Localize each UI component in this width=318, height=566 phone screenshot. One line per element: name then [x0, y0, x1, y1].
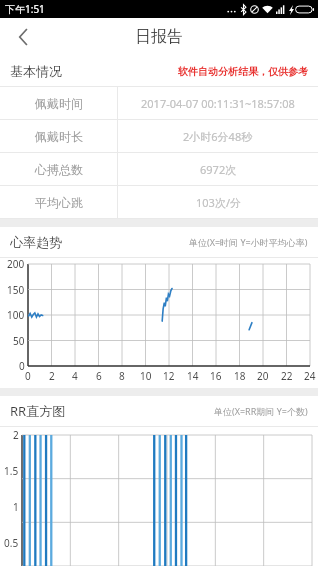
staticText: 20 — [257, 369, 269, 383]
staticText: 心率趋势 — [10, 234, 62, 250]
button[interactable]: 佩戴时间 — [0, 87, 318, 119]
staticText: 2 — [49, 369, 55, 383]
staticText: 12 — [163, 369, 175, 383]
staticText: 2 — [13, 428, 19, 442]
staticText: 6 — [96, 369, 102, 383]
staticText: 1 — [13, 500, 19, 514]
staticText: 100 — [7, 308, 25, 322]
button[interactable]: 心搏总数 — [0, 153, 318, 185]
staticText: 103次/分 — [196, 195, 241, 210]
button[interactable]: Back — [0, 18, 46, 56]
staticText: RR直方图 — [10, 402, 66, 420]
staticText: 14 — [187, 369, 199, 383]
staticText: 基本情况 — [10, 63, 62, 79]
button[interactable]: 佩戴时长 — [0, 120, 318, 152]
staticText: 2小时6分48秒 — [183, 129, 253, 144]
staticText: 22 — [281, 369, 293, 383]
staticText: 2017-04-07 00:11:31~18:57:08 — [141, 96, 295, 111]
button[interactable]: 平均心跳 — [0, 186, 318, 218]
staticText: 0.5 — [4, 536, 19, 550]
staticText: 平均心跳 — [35, 195, 83, 210]
staticText: 10 — [140, 369, 152, 383]
staticText: 200 — [7, 257, 25, 271]
staticText: 4 — [72, 369, 78, 383]
staticText: 8 — [119, 369, 125, 383]
staticText: 150 — [7, 283, 25, 297]
staticText: 日报告 — [135, 27, 183, 47]
staticText: 1.5 — [4, 464, 19, 478]
staticText: 软件自动分析结果，仅供参考 — [178, 65, 308, 78]
staticText: 6972次 — [200, 162, 237, 177]
staticText: 18 — [234, 369, 246, 383]
staticText: 下午1:51 — [5, 2, 45, 16]
staticText: 50 — [13, 334, 25, 348]
staticText: 单位(X=RR期间 Y=个数) — [214, 405, 308, 417]
staticText: 16 — [210, 369, 222, 383]
staticText: 心搏总数 — [35, 162, 83, 177]
staticText: 24 — [304, 369, 316, 383]
staticText: 佩戴时间 — [35, 96, 83, 111]
staticText: 0 — [25, 369, 31, 383]
staticText: 单位(X=时间 Y=小时平均心率) — [189, 236, 308, 248]
staticText: 佩戴时长 — [35, 129, 83, 144]
staticText: 0 — [19, 359, 25, 373]
